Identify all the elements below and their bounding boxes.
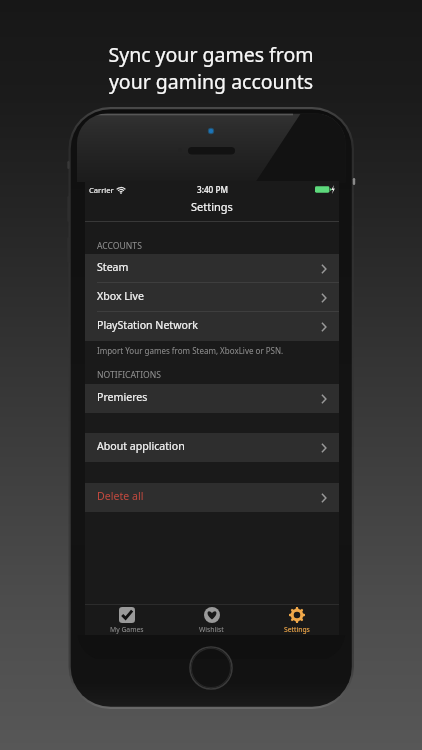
button[interactable]: Wishlist tab (169, 604, 254, 635)
staticText: Sync your games from your gaming account… (108, 41, 314, 94)
staticText: Wishlist (199, 625, 224, 634)
button[interactable]: Delete all (85, 483, 339, 512)
button[interactable]: Xbox Live (85, 283, 339, 312)
button[interactable]: About application (85, 433, 339, 462)
button[interactable]: Settings tab (254, 604, 339, 635)
staticText: My Games (110, 625, 144, 634)
staticText: ACCOUNTS (97, 240, 142, 252)
staticText: Carrier (89, 185, 114, 195)
staticText: Delete all (97, 489, 144, 503)
button[interactable]: My Games tab (85, 604, 169, 635)
staticText: NOTIFICATIONS (97, 369, 162, 381)
staticText: 3:40 PM (197, 184, 228, 195)
staticText: About application (97, 439, 185, 453)
staticText: Steam (97, 260, 129, 274)
button[interactable]: Steam (85, 254, 339, 283)
staticText: PlayStation Network (97, 318, 198, 332)
button[interactable]: PlayStation Network (85, 312, 339, 341)
staticText: Settings (191, 199, 233, 214)
staticText: Import Your games from Steam, XboxLive o… (97, 345, 284, 356)
staticText: Xbox Live (97, 289, 144, 303)
button[interactable]: Premieres (85, 384, 339, 413)
staticText: Settings (284, 625, 310, 634)
staticText: Premieres (97, 390, 148, 404)
